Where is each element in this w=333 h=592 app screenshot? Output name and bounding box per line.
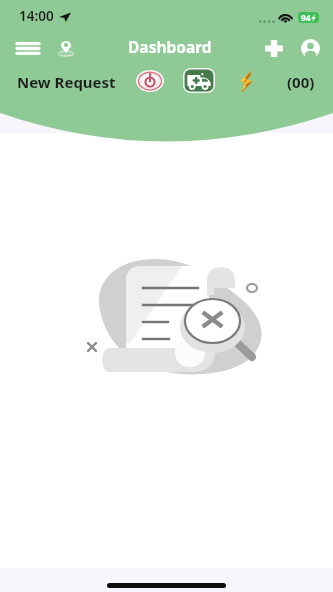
staticText: 94: [301, 12, 311, 23]
staticText: New Request: [17, 72, 116, 92]
staticText: Dashboard: [128, 36, 212, 57]
button[interactable]: Location: [50, 31, 82, 65]
button[interactable]: Emergency: [236, 70, 256, 94]
button[interactable]: Menu: [8, 31, 48, 65]
button[interactable]: Power: [135, 69, 165, 93]
button[interactable]: Account: [293, 31, 327, 65]
button[interactable]: Add: [257, 31, 291, 65]
button[interactable]: Ambulance: [183, 68, 215, 93]
staticText: 14:00: [19, 7, 54, 25]
staticText: (00): [287, 72, 315, 92]
